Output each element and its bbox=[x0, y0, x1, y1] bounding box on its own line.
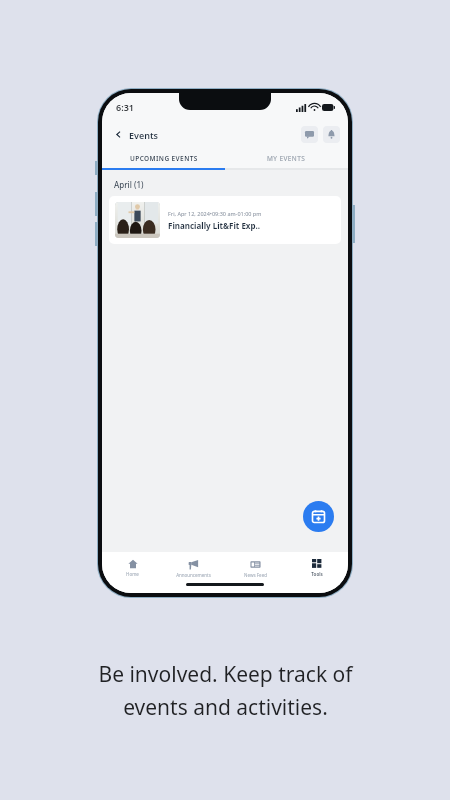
button[interactable]: UPCOMING EVENTS bbox=[102, 148, 225, 168]
button[interactable]: Add event bbox=[303, 501, 334, 532]
staticText: News Feed bbox=[244, 572, 267, 578]
staticText: Home bbox=[126, 571, 139, 577]
button[interactable]: Home bbox=[102, 556, 163, 580]
staticText: April (1) bbox=[114, 179, 144, 190]
staticText: 6:31 bbox=[116, 101, 134, 113]
button[interactable]: Notifications bbox=[323, 126, 340, 143]
staticText: Fri, Apr 12, 2024•09:30 am-01:00 pm bbox=[168, 210, 262, 217]
button[interactable]: Messages bbox=[301, 126, 318, 143]
button[interactable]: News Feed bbox=[224, 556, 286, 580]
staticText: Events bbox=[129, 129, 159, 141]
button[interactable]: Back bbox=[111, 127, 126, 142]
button[interactable]: MY EVENTS bbox=[225, 148, 348, 168]
staticText: Announcements bbox=[176, 572, 211, 578]
staticText: events and activities. bbox=[123, 693, 328, 722]
button[interactable]: Tools bbox=[286, 556, 348, 580]
staticText: MY EVENTS bbox=[267, 154, 306, 163]
button[interactable]: Fri, Apr 12, 2024•09:30 am-01:00 pm bbox=[109, 196, 341, 244]
staticText: Financially Lit&Fit Exp.. bbox=[168, 220, 261, 231]
staticText: UPCOMING EVENTS bbox=[130, 154, 198, 163]
staticText: Tools bbox=[311, 571, 323, 577]
button[interactable]: Announcements bbox=[163, 556, 224, 580]
staticText: Be involved. Keep track of bbox=[98, 660, 353, 689]
